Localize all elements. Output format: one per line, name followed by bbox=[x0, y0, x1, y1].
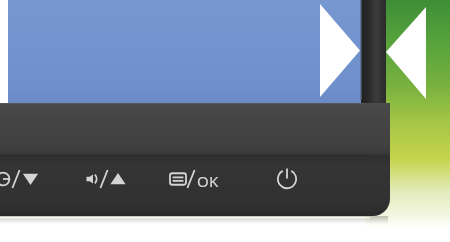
button[interactable]: Input source and channel down bbox=[0, 161, 58, 197]
button[interactable]: Power bbox=[262, 161, 314, 197]
staticText: OK bbox=[197, 171, 219, 191]
button[interactable]: Volume and channel up bbox=[70, 161, 134, 197]
button[interactable]: Menu and OK bbox=[156, 161, 232, 197]
